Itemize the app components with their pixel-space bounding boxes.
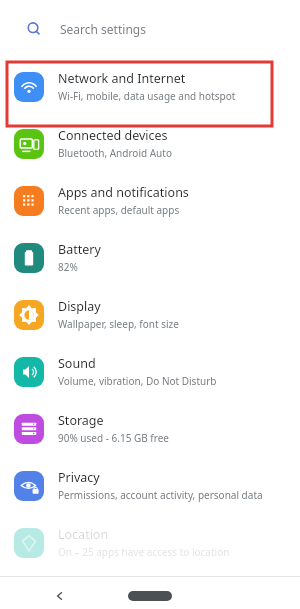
staticText: Recent apps, default apps <box>58 203 180 217</box>
staticText: Bluetooth, Android Auto <box>58 146 172 160</box>
staticText: Wallpaper, sleep, font size <box>58 317 179 331</box>
button[interactable]: Home <box>128 591 172 601</box>
button[interactable]: Display <box>0 286 300 343</box>
staticText: Apps and notifications <box>58 184 189 201</box>
button[interactable]: Privacy <box>0 457 300 514</box>
staticText: Wi-Fi, mobile, data usage and hotspot <box>58 89 236 103</box>
button[interactable]: Location <box>0 514 300 571</box>
button[interactable]: Back <box>50 586 70 606</box>
staticText: 90% used - 6.15 GB free <box>58 431 169 445</box>
staticText: Search settings <box>60 21 146 37</box>
staticText: Volume, vibration, Do Not Disturb <box>58 374 217 388</box>
staticText: Battery <box>58 241 101 258</box>
staticText: Location <box>58 526 109 543</box>
staticText: Privacy <box>58 469 100 486</box>
staticText: Permissions, account activity, personal … <box>58 488 263 502</box>
button[interactable]: Search settings <box>12 12 288 45</box>
staticText: On – 25 apps have access to location <box>58 545 230 559</box>
button[interactable]: Network and Internet <box>0 58 300 115</box>
staticText: Sound <box>58 355 96 372</box>
button[interactable]: Apps and notifications <box>0 172 300 229</box>
staticText: Network and Internet <box>58 70 186 87</box>
staticText: Connected devices <box>58 127 168 144</box>
staticText: 82% <box>58 260 78 274</box>
button[interactable]: Sound <box>0 343 300 400</box>
staticText: Storage <box>58 412 104 429</box>
button[interactable]: Battery <box>0 229 300 286</box>
staticText: Display <box>58 298 101 315</box>
button[interactable]: Connected devices <box>0 115 300 172</box>
button[interactable]: Storage <box>0 400 300 457</box>
